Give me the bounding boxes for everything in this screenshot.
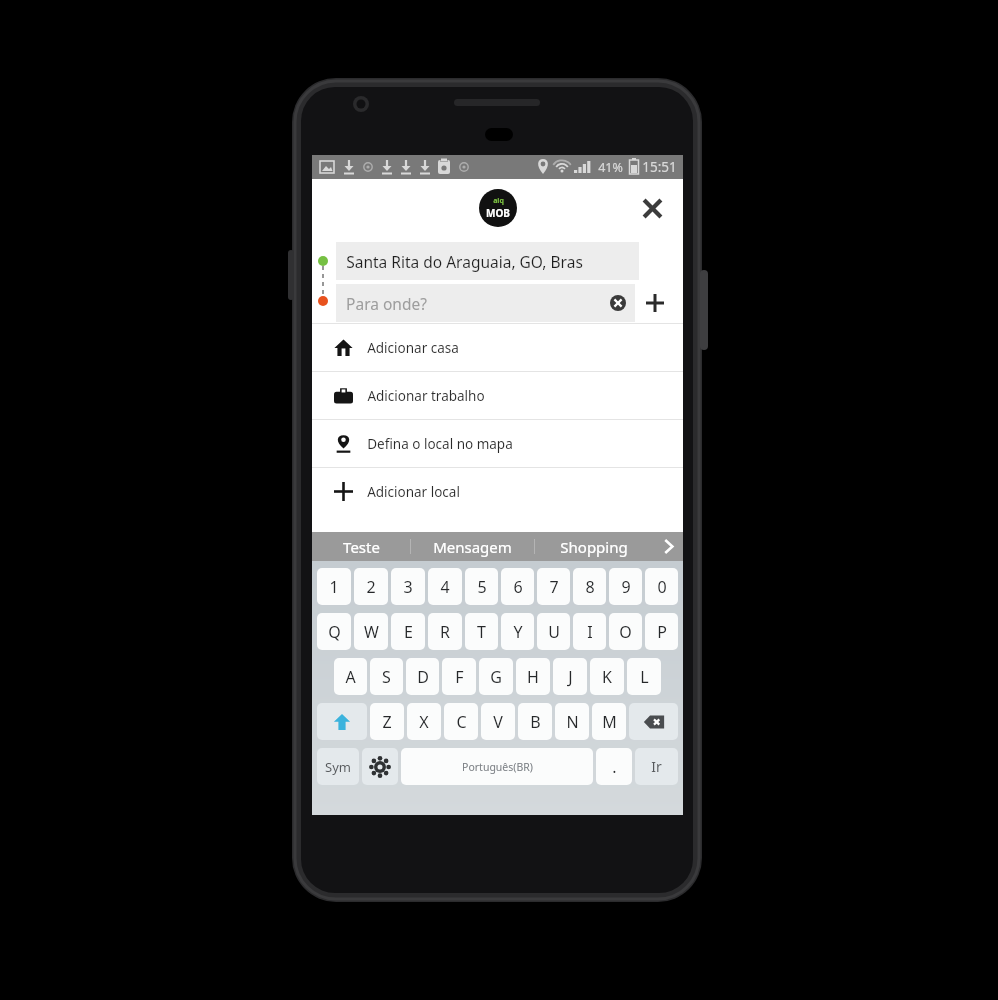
button[interactable]: F <box>442 658 476 695</box>
staticText: 5 <box>477 576 487 598</box>
button[interactable]: Adicionar parada <box>635 284 675 322</box>
staticText: Português(BR) <box>462 760 533 774</box>
button[interactable]: Limpar <box>607 292 629 314</box>
button[interactable]: 9 <box>609 568 642 605</box>
button[interactable]: 4 <box>428 568 462 605</box>
staticText: . <box>612 756 617 778</box>
staticText: A <box>345 666 356 688</box>
button[interactable]: O <box>609 613 642 650</box>
button[interactable]: Adicionar trabalho <box>312 372 683 419</box>
button[interactable]: Mais sugestões <box>653 532 683 561</box>
staticText: MOB <box>486 206 510 220</box>
button[interactable]: . <box>596 748 632 785</box>
staticText: V <box>493 711 503 733</box>
button[interactable]: M <box>592 703 626 740</box>
staticText: 1 <box>329 576 339 598</box>
button[interactable]: Mensagem <box>411 532 534 561</box>
button[interactable]: U <box>537 613 570 650</box>
button[interactable]: V <box>481 703 515 740</box>
staticText: Adicionar casa <box>367 339 459 357</box>
staticText: 41% <box>598 159 623 176</box>
button[interactable]: X <box>407 703 441 740</box>
button[interactable]: Ir <box>635 748 678 785</box>
button[interactable]: N <box>555 703 589 740</box>
button[interactable]: T <box>465 613 498 650</box>
staticText: X <box>419 711 429 733</box>
staticText: N <box>566 711 579 733</box>
button[interactable]: A <box>334 658 367 695</box>
staticText: 4 <box>440 576 450 598</box>
button[interactable]: Y <box>501 613 534 650</box>
staticText: Shopping <box>560 537 628 557</box>
button[interactable]: Adicionar local <box>312 468 683 515</box>
staticText: Teste <box>343 537 380 557</box>
staticText: 2 <box>366 576 376 598</box>
button[interactable]: Q <box>317 613 351 650</box>
staticText: Mensagem <box>433 537 512 557</box>
button[interactable]: Sym <box>317 748 359 785</box>
staticText: Para onde? <box>346 293 427 314</box>
button[interactable]: H <box>516 658 550 695</box>
button[interactable]: Configurações <box>362 748 398 785</box>
button[interactable]: Adicionar casa <box>312 324 683 371</box>
button[interactable]: 2 <box>354 568 388 605</box>
button[interactable]: C <box>444 703 478 740</box>
button[interactable]: 7 <box>537 568 570 605</box>
button[interactable]: E <box>391 613 425 650</box>
staticText: K <box>602 666 612 688</box>
button[interactable]: Maiúsculas <box>317 703 367 740</box>
staticText: Q <box>328 621 341 643</box>
button[interactable]: 6 <box>501 568 534 605</box>
button[interactable]: J <box>553 658 587 695</box>
button[interactable]: 8 <box>573 568 606 605</box>
button[interactable]: Para onde? <box>336 284 635 322</box>
button[interactable]: aiqmob logo <box>479 189 517 227</box>
button[interactable]: D <box>406 658 439 695</box>
staticText: F <box>455 666 464 688</box>
staticText: Adicionar trabalho <box>367 387 485 405</box>
staticText: Adicionar local <box>367 483 460 501</box>
button[interactable]: W <box>354 613 388 650</box>
staticText: Y <box>513 621 523 643</box>
staticText: T <box>477 621 486 643</box>
staticText: 15:51 <box>642 158 677 176</box>
staticText: G <box>490 666 502 688</box>
button[interactable]: Shopping <box>535 532 653 561</box>
button[interactable]: Santa Rita do Araguaia, GO, Bras <box>336 242 639 280</box>
staticText: J <box>568 666 573 688</box>
button[interactable]: 5 <box>465 568 498 605</box>
staticText: L <box>640 666 649 688</box>
staticText: B <box>530 711 541 733</box>
button[interactable]: 0 <box>645 568 678 605</box>
staticText: H <box>527 666 539 688</box>
button[interactable]: L <box>627 658 661 695</box>
staticText: P <box>657 621 667 643</box>
staticText: W <box>364 621 379 643</box>
staticText: S <box>382 666 391 688</box>
button[interactable]: Apagar <box>629 703 678 740</box>
staticText: 6 <box>513 576 523 598</box>
staticText: M <box>602 711 617 733</box>
button[interactable]: Defina o local no mapa <box>312 420 683 467</box>
button[interactable]: 1 <box>317 568 351 605</box>
staticText: D <box>417 666 429 688</box>
button[interactable]: Z <box>370 703 404 740</box>
staticText: 7 <box>549 576 559 598</box>
button[interactable]: G <box>479 658 513 695</box>
staticText: U <box>548 621 560 643</box>
button[interactable]: Teste <box>312 532 410 561</box>
button[interactable]: K <box>590 658 624 695</box>
button[interactable]: Português(BR) <box>401 748 593 785</box>
staticText: Ir <box>651 757 662 776</box>
button[interactable]: I <box>573 613 606 650</box>
staticText: Defina o local no mapa <box>367 435 513 453</box>
button[interactable]: 3 <box>391 568 425 605</box>
button[interactable]: B <box>518 703 552 740</box>
button[interactable]: S <box>370 658 403 695</box>
button[interactable]: Fechar <box>633 189 671 227</box>
button[interactable]: R <box>428 613 462 650</box>
staticText: O <box>619 621 632 643</box>
staticText: Sym <box>325 758 351 776</box>
button[interactable]: P <box>645 613 678 650</box>
staticText: Santa Rita do Araguaia, GO, Bras <box>346 251 583 272</box>
